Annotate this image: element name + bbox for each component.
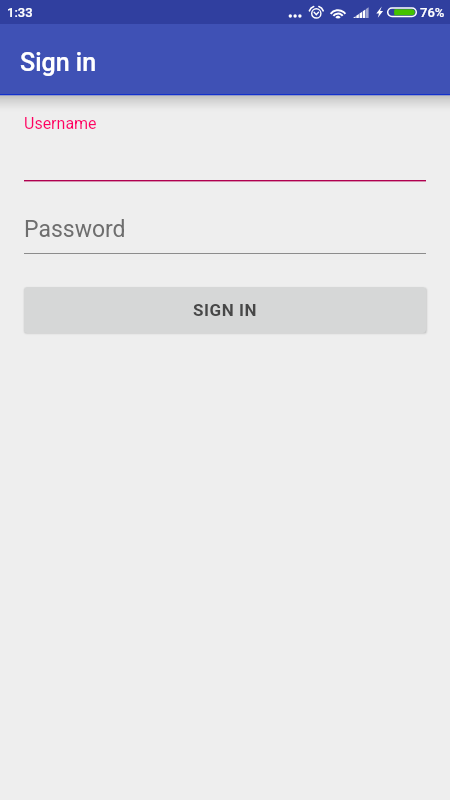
staticText: Username xyxy=(24,114,97,133)
button[interactable]: Password xyxy=(24,216,426,254)
staticText: 76% xyxy=(420,5,445,20)
staticText: SIGN IN xyxy=(193,300,258,320)
button[interactable]: SIGN IN xyxy=(24,287,426,333)
staticText: 1:33 xyxy=(7,5,33,20)
staticText: Sign in xyxy=(20,48,97,77)
button[interactable]: Username xyxy=(24,114,426,182)
staticText: Password xyxy=(24,216,126,243)
